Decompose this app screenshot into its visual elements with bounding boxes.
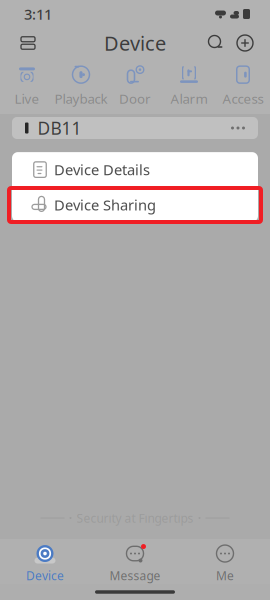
button[interactable]: Device Sharing [12,188,258,222]
staticText: Access [222,90,263,107]
button[interactable]: Menu [10,28,46,58]
button[interactable]: Search [202,28,230,58]
button[interactable]: Message [90,542,180,584]
staticText: Message [109,567,160,583]
button[interactable]: Playback [54,64,108,108]
staticText: Security at Fingertips [76,510,193,526]
staticText: Device Details [54,160,150,179]
button[interactable]: Me [180,542,270,584]
staticText: 3:11 [24,4,52,24]
button[interactable]: Alarm [162,64,216,108]
button[interactable]: Add device [230,28,260,58]
staticText: Device [104,30,166,56]
button[interactable]: Device [0,542,90,584]
staticText: Playback [54,90,107,107]
staticText: DB11 [37,116,81,139]
staticText: Device [26,567,64,583]
staticText: Alarm [170,90,207,107]
staticText: Live [14,90,39,107]
button[interactable]: More options [221,117,255,139]
button[interactable]: Live [0,64,54,108]
button[interactable]: Door [108,64,162,108]
button[interactable]: Device Details [12,152,258,187]
staticText: Me [216,567,234,583]
button[interactable]: Access [216,64,270,108]
staticText: Door [119,90,151,107]
staticText: Device Sharing [54,195,156,215]
